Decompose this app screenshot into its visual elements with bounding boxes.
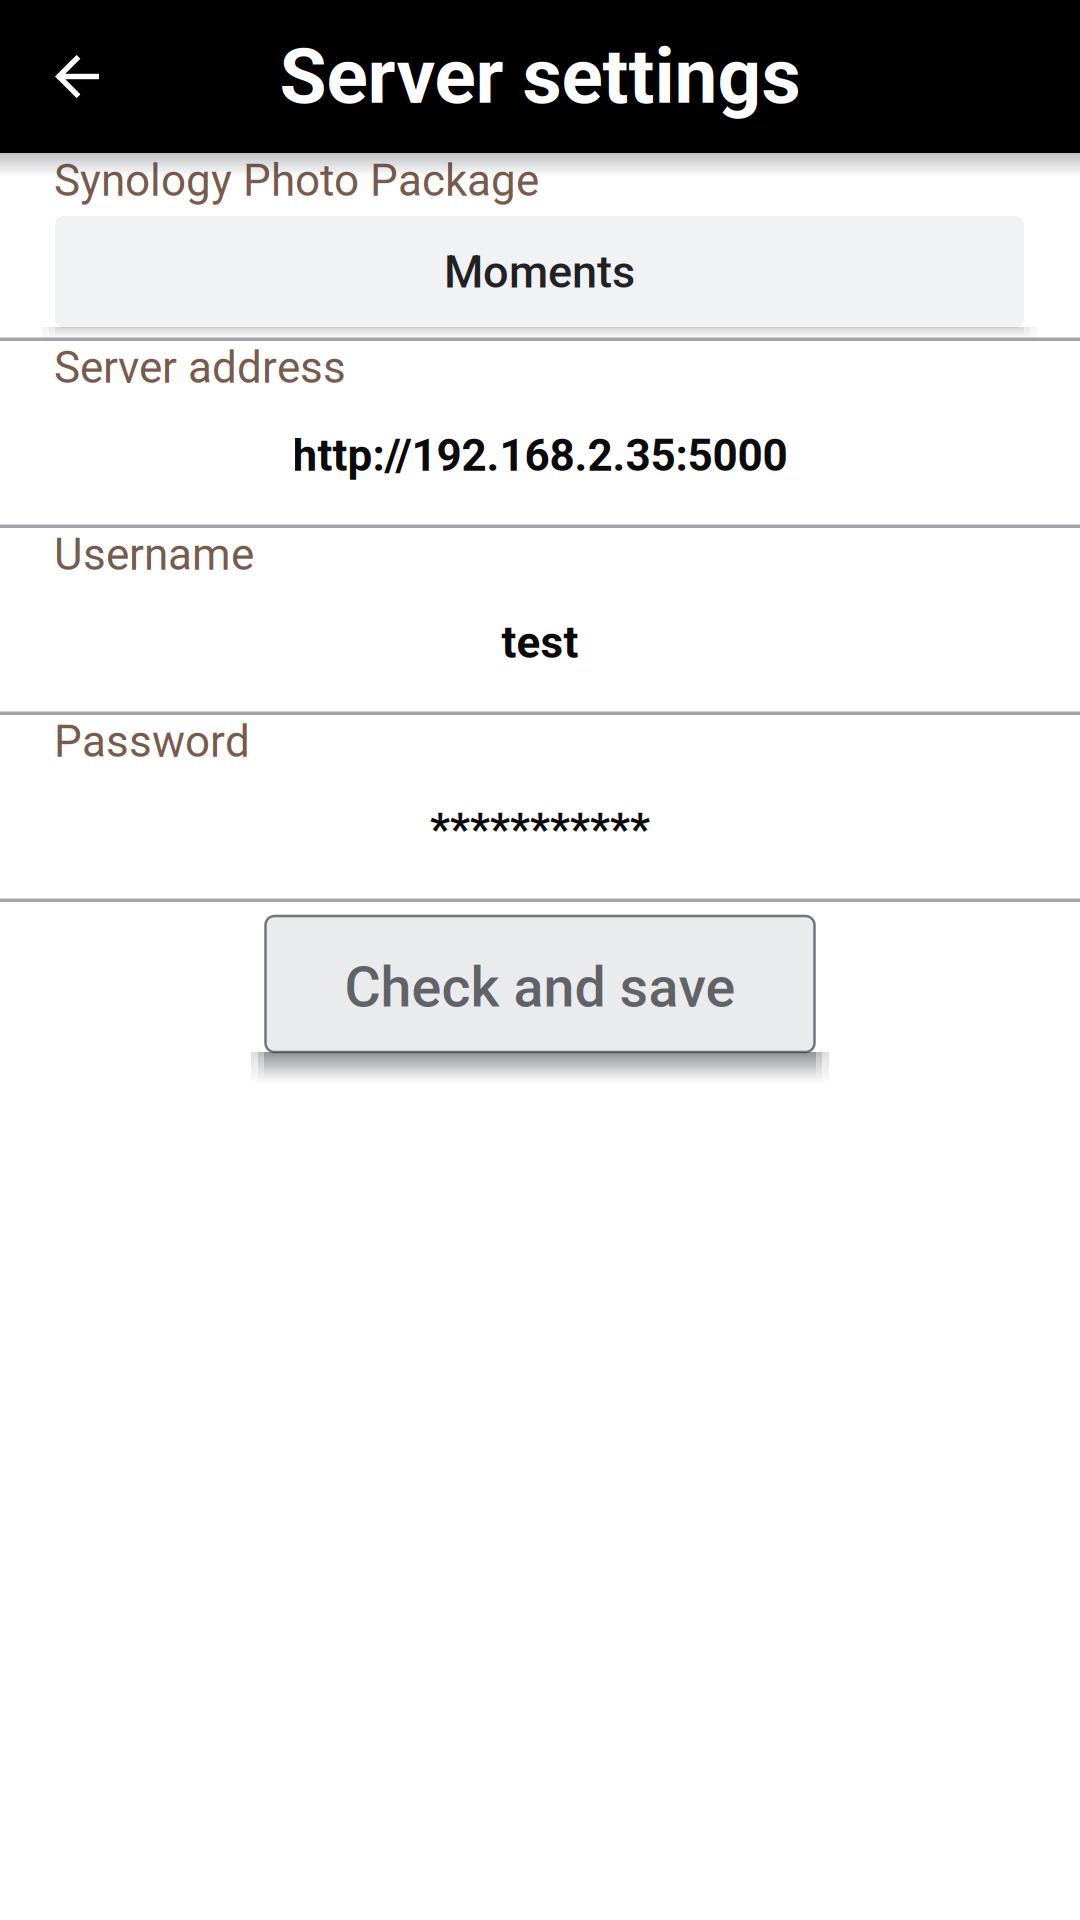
staticText: Check and save [344,955,735,1020]
staticText: Username [54,529,254,581]
staticText: Server address [54,342,346,394]
button[interactable]: Check and save [265,916,814,1052]
staticText: Synology Photo Package [54,155,539,207]
staticText: test [501,617,578,669]
staticText: Moments [444,246,635,298]
staticText: *********** [430,804,650,856]
staticText: Server settings [279,32,800,121]
staticText: Password [54,716,250,768]
staticText: http://192.168.2.35:5000 [292,430,787,482]
button[interactable]: Back [0,0,154,153]
button[interactable]: Moments [55,216,1024,328]
